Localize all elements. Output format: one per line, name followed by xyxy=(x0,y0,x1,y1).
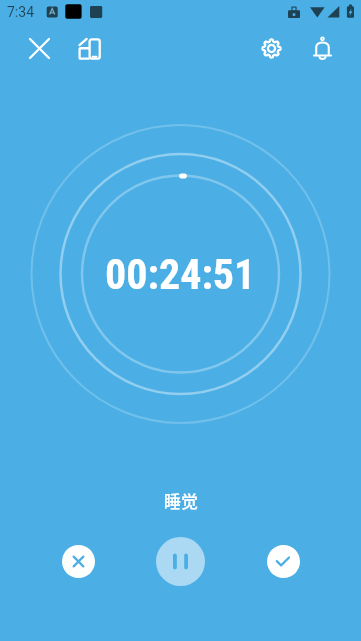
button[interactable]: Settings xyxy=(247,24,295,72)
staticText: 7:34 xyxy=(7,4,34,20)
button[interactable]: Notifications xyxy=(298,24,346,72)
button[interactable]: Close xyxy=(15,24,63,72)
button[interactable]: Pause xyxy=(156,537,205,586)
button[interactable]: Done xyxy=(267,545,300,578)
button[interactable]: Stop xyxy=(62,545,95,578)
button[interactable]: Split screen xyxy=(65,24,113,72)
staticText: 00:24:51 xyxy=(105,250,256,299)
staticText: 睡觉 xyxy=(164,488,198,513)
